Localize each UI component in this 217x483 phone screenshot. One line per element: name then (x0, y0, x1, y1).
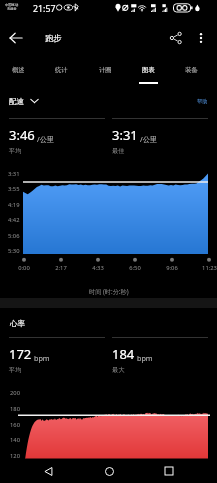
staticText: 图表 (142, 66, 155, 74)
button[interactable]: 172 (9, 337, 105, 374)
button[interactable]: 统计 (40, 53, 83, 86)
button[interactable]: 帮助 (197, 98, 208, 105)
staticText: /公里 (37, 134, 55, 144)
button[interactable]: Share (164, 26, 188, 50)
button[interactable]: 概述 (0, 53, 40, 86)
button[interactable]: 图表 (127, 53, 170, 86)
staticText: 6:50 (129, 264, 141, 272)
button[interactable]: 配速 (9, 96, 39, 106)
staticText: 200 (10, 389, 20, 397)
staticText: 平均 (9, 147, 22, 155)
staticText: 配速 (9, 97, 24, 106)
staticText: 160 (10, 421, 20, 429)
staticText: 0:00 (18, 264, 30, 272)
staticText: 平均 (9, 366, 22, 374)
staticText: 跑步 (45, 33, 62, 43)
button[interactable]: Recent apps (156, 459, 182, 483)
staticText: 2:17 (55, 264, 67, 272)
button[interactable]: Home (96, 459, 122, 483)
staticText: bpm (137, 353, 153, 363)
button[interactable]: 装备 (170, 53, 213, 86)
staticText: 21:57 (33, 3, 56, 15)
staticText: 3:55 (8, 185, 20, 193)
staticText: 5:06 (8, 232, 20, 240)
staticText: 140 (10, 436, 20, 444)
staticText: 最佳 (112, 147, 125, 155)
staticText: 3:46 (9, 126, 35, 144)
button[interactable]: 计圈 (84, 53, 127, 86)
staticText: 中国移动 (5, 3, 19, 7)
staticText: 时间 (时:分:秒) (89, 287, 129, 295)
staticText: 4:33 (92, 264, 104, 272)
staticText: 无服务 (7, 7, 17, 11)
staticText: 心率 (10, 319, 25, 328)
button[interactable]: Back (4, 26, 28, 50)
staticText: 统计 (55, 66, 68, 74)
staticText: 9:06 (166, 264, 178, 272)
staticText: 184 (112, 345, 135, 363)
button[interactable]: 184 (112, 337, 208, 374)
staticText: 3:31 (8, 170, 20, 178)
staticText: 装备 (185, 66, 198, 74)
staticText: 5:30 (8, 247, 20, 255)
staticText: bpm (34, 353, 50, 363)
staticText: 概述 (12, 66, 25, 74)
button[interactable]: More options (189, 26, 213, 50)
staticText: 4:19 (8, 201, 20, 209)
staticText: 最大 (112, 366, 125, 374)
button[interactable]: 3:31 (112, 118, 208, 155)
staticText: 11:23 (202, 264, 217, 272)
staticText: 4:42 (8, 216, 20, 224)
staticText: 120 (10, 452, 20, 460)
button[interactable]: 3:46 (9, 118, 105, 155)
staticText: 3:31 (112, 126, 138, 144)
staticText: 172 (9, 345, 32, 363)
staticText: /公里 (140, 134, 158, 144)
staticText: 180 (10, 405, 20, 413)
staticText: 计圈 (99, 66, 112, 74)
button[interactable]: Back (35, 459, 61, 483)
